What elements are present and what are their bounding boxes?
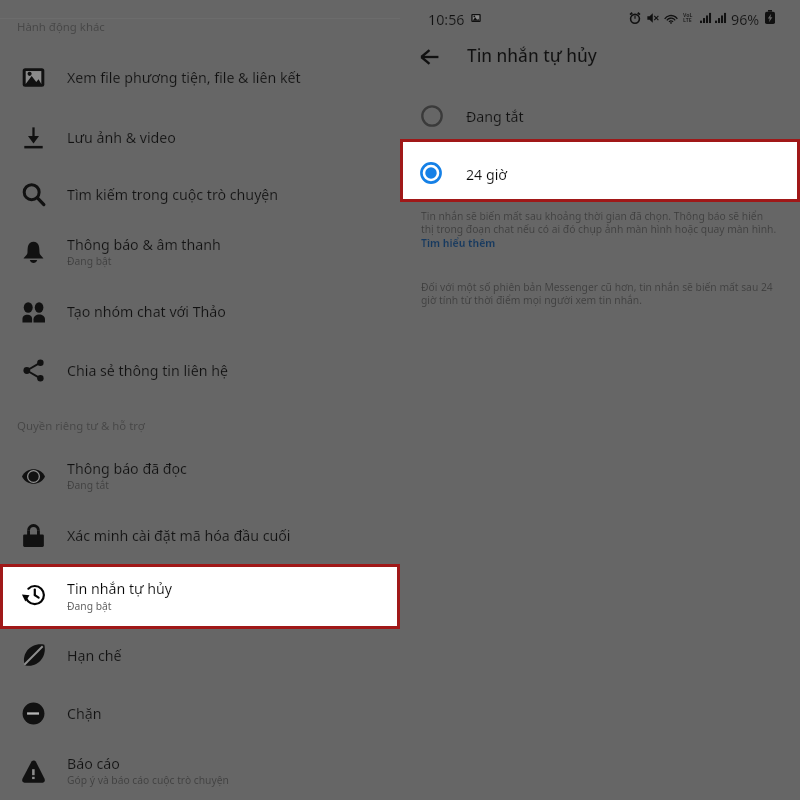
staticText: Góp ý và báo cáo cuộc trò chuyện <box>67 773 229 787</box>
button[interactable]: Xem file phương tiện, file & liên kết <box>0 48 400 106</box>
button[interactable]: Báo cáo <box>0 742 400 800</box>
staticText: Tin nhắn tự hủy <box>67 579 173 598</box>
staticText: Tìm kiếm trong cuộc trò chuyện <box>67 185 279 204</box>
staticText: Hành động khác <box>17 19 105 35</box>
staticText: Tạo nhóm chat với Thảo <box>67 302 226 321</box>
staticText: Đang tắt <box>466 107 524 126</box>
button[interactable]: Chia sẻ thông tin liên hệ <box>0 341 400 399</box>
staticText: 24 giờ <box>466 165 508 184</box>
button[interactable]: Tìm hiểu thêm <box>421 236 496 250</box>
staticText: Đang bật <box>67 254 112 268</box>
staticText: Xác minh cài đặt mã hóa đầu cuối <box>67 526 291 545</box>
staticText: Thông báo đã đọc <box>67 459 187 478</box>
staticText: Tin nhắn tự hủy <box>467 44 597 67</box>
button[interactable]: Thông báo & âm thanh <box>0 223 400 281</box>
button[interactable]: Thông báo đã đọc <box>0 447 400 505</box>
staticText: LTE <box>683 16 692 23</box>
button[interactable]: 24 giờ <box>403 142 797 199</box>
button[interactable]: Đang tắt <box>400 92 800 139</box>
button[interactable]: Chặn <box>0 684 400 742</box>
staticText: Báo cáo <box>67 754 120 773</box>
staticText: Xem file phương tiện, file & liên kết <box>67 68 301 87</box>
staticText: 10:56 <box>428 10 465 29</box>
button[interactable]: Tìm kiếm trong cuộc trò chuyện <box>0 165 400 223</box>
button[interactable]: Hạn chế <box>0 626 400 684</box>
staticText: Chặn <box>67 704 102 723</box>
staticText: Đang bật <box>67 599 112 613</box>
button[interactable]: Lưu ảnh & video <box>0 108 400 166</box>
staticText: Thông báo & âm thanh <box>67 235 221 254</box>
staticText: Chia sẻ thông tin liên hệ <box>67 361 228 380</box>
staticText: Quyền riêng tư & hỗ trợ <box>17 418 145 434</box>
staticText: Đối với một số phiên bản Messenger cũ hơ… <box>421 280 783 307</box>
button[interactable]: Back <box>415 42 444 71</box>
staticText: Đang tắt <box>67 478 109 492</box>
staticText: Tìm hiểu thêm <box>421 236 496 250</box>
staticText: Hạn chế <box>67 646 122 665</box>
button[interactable]: Tin nhắn tự hủy <box>3 567 397 626</box>
staticText: Tin nhắn sẽ biến mất sau khoảng thời gia… <box>421 209 777 236</box>
staticText: 96% <box>731 10 760 29</box>
staticText: VoL <box>683 11 693 18</box>
staticText: Lưu ảnh & video <box>67 128 176 147</box>
button[interactable]: Tạo nhóm chat với Thảo <box>0 282 400 340</box>
button[interactable]: Xác minh cài đặt mã hóa đầu cuối <box>0 506 400 564</box>
